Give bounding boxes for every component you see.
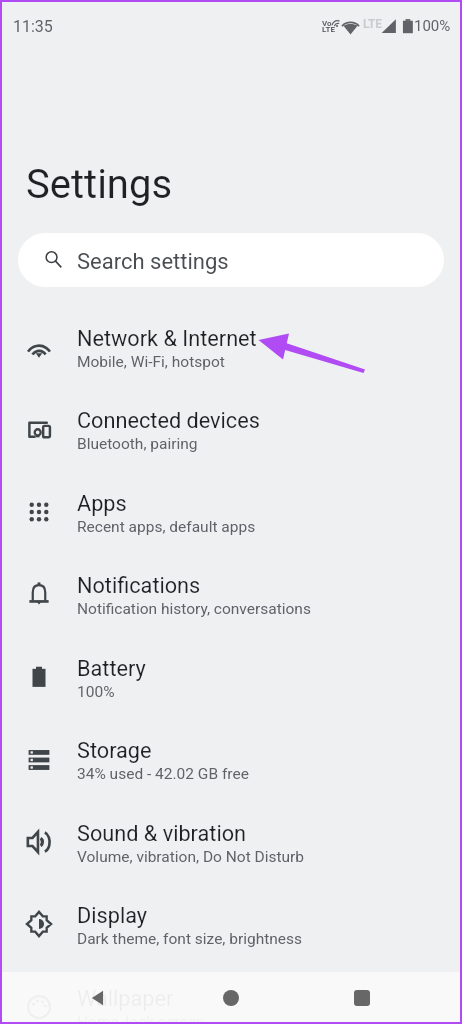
staticText: Search settings <box>77 249 229 275</box>
staticText: Storage <box>77 738 152 763</box>
staticText: Dark theme, font size, brightness <box>77 930 303 948</box>
staticText: LTE <box>363 17 383 31</box>
button[interactable]: Battery <box>0 627 462 710</box>
staticText: Sound & vibration <box>77 821 247 846</box>
staticText: Vo <box>322 19 332 28</box>
button[interactable]: Search settings <box>18 233 444 287</box>
staticText: Settings <box>26 161 173 208</box>
staticText: Bluetooth, pairing <box>77 435 198 453</box>
button[interactable]: Display <box>0 874 462 957</box>
staticText: Recent apps, default apps <box>77 518 256 536</box>
button[interactable]: Storage <box>0 709 462 792</box>
staticText: Notification history, conversations <box>77 600 311 618</box>
button[interactable]: Wallpaper <box>0 957 462 1024</box>
button[interactable]: Recents <box>328 972 396 1024</box>
staticText: Apps <box>77 491 127 516</box>
button[interactable]: Connected devices <box>0 379 462 462</box>
staticText: Network & Internet <box>77 326 257 351</box>
button[interactable]: Back <box>64 972 132 1024</box>
button[interactable]: Home <box>197 972 265 1024</box>
staticText: 100% <box>414 17 451 35</box>
button[interactable]: Network & Internet <box>0 297 462 380</box>
staticText: Notifications <box>77 573 201 598</box>
staticText: 100% <box>77 683 115 701</box>
staticText: Connected devices <box>77 408 260 433</box>
button[interactable]: Sound & vibration <box>0 792 462 875</box>
staticText: LTE <box>322 25 335 34</box>
staticText: 11:35 <box>13 17 53 36</box>
button[interactable]: Notifications <box>0 544 462 627</box>
staticText: Mobile, Wi-Fi, hotspot <box>77 353 225 371</box>
staticText: Home, lock screen <box>77 1013 205 1024</box>
staticText: 34% used - 42.02 GB free <box>77 765 249 783</box>
staticText: Display <box>77 903 148 928</box>
staticText: Wallpaper <box>77 986 174 1011</box>
staticText: Volume, vibration, Do Not Disturb <box>77 848 305 866</box>
staticText: Battery <box>77 656 146 681</box>
button[interactable]: Apps <box>0 462 462 545</box>
